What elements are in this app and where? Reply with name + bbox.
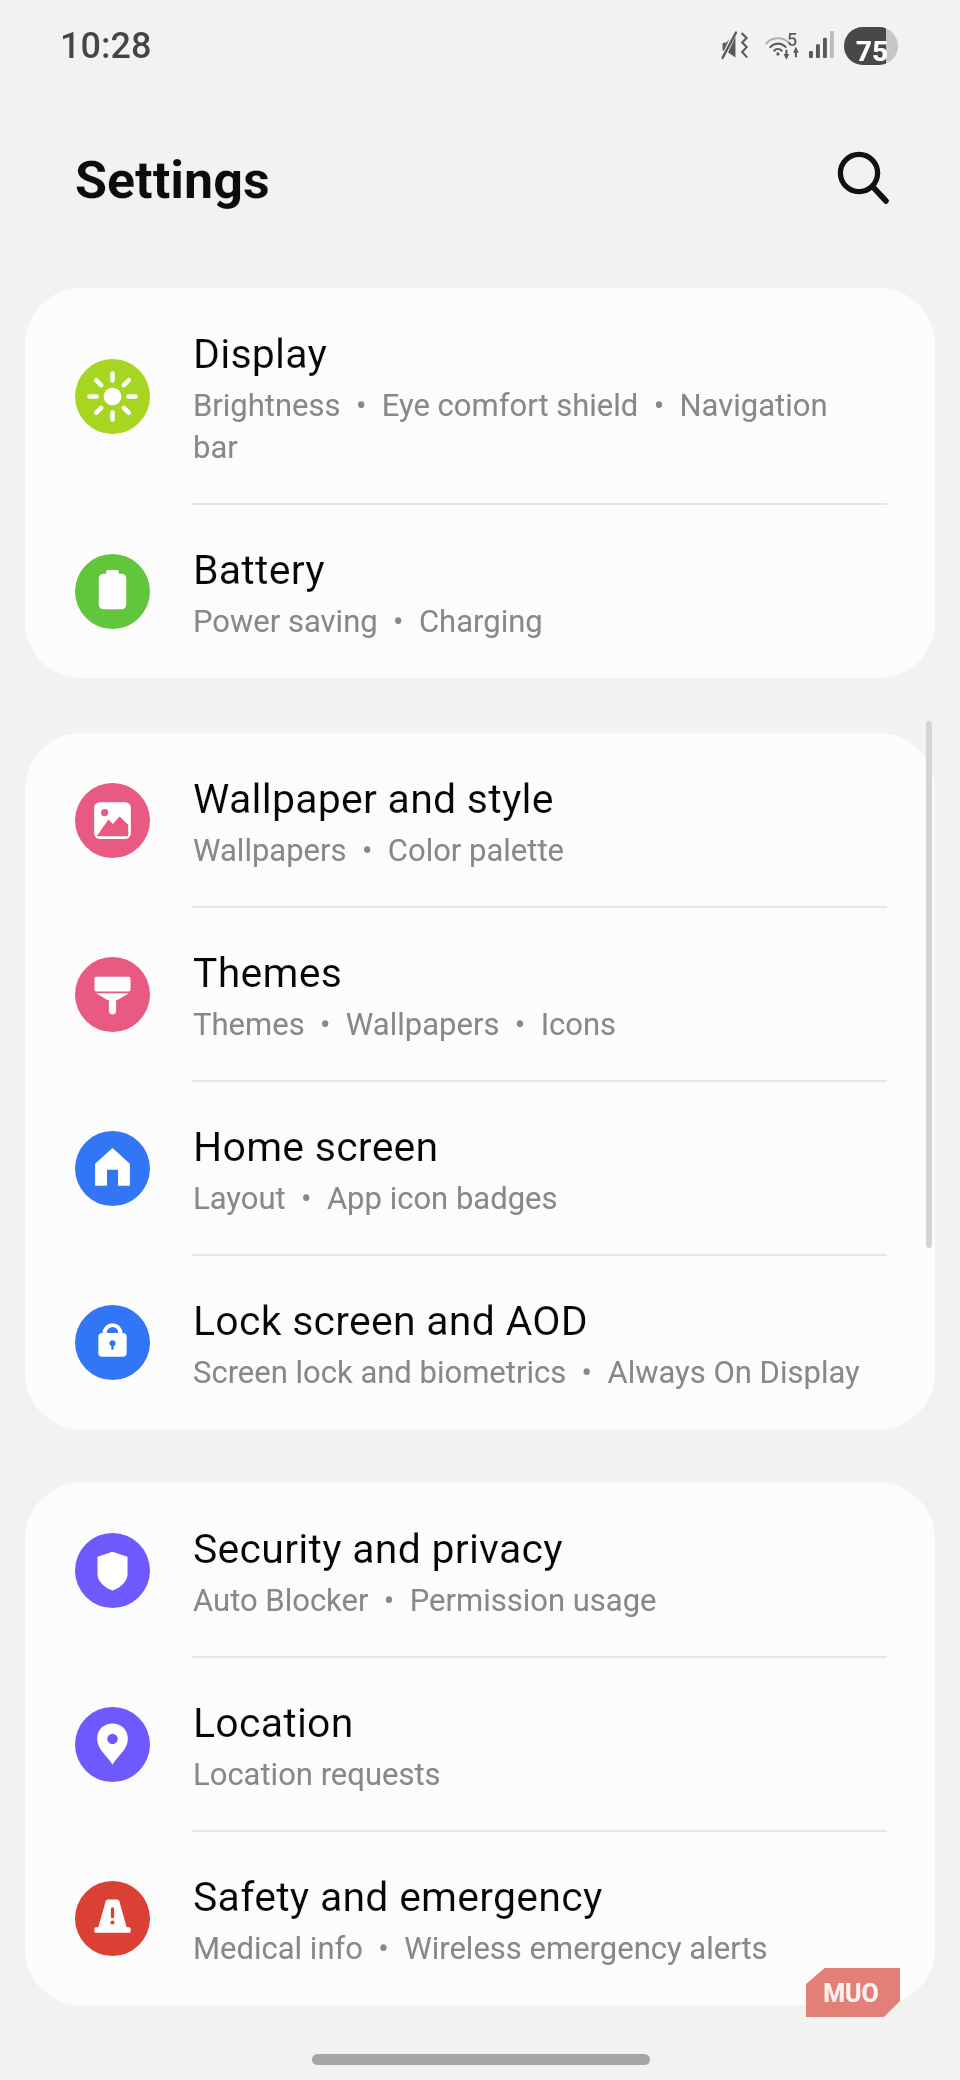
button[interactable]: Home screen [25,1081,935,1255]
staticText: Location [193,1699,935,1747]
button[interactable]: Themes [25,907,935,1081]
staticText: Themes • Wallpapers • Icons [193,1002,935,1044]
button[interactable]: Safety and emergency [25,1831,935,2005]
staticText: 10:28 [60,25,152,67]
staticText: Battery [193,546,935,594]
button[interactable]: Battery [25,504,935,678]
staticText: Screen lock and biometrics • Always On D… [193,1350,935,1392]
staticText: Lock screen and AOD [193,1297,935,1345]
staticText: Auto Blocker • Permission usage [193,1578,935,1620]
staticText: Settings [75,150,270,211]
staticText: 5 [787,29,798,50]
staticText: Location requests [193,1752,935,1794]
button[interactable]: Location [25,1657,935,1831]
staticText: Themes [193,949,935,997]
staticText: Medical info • Wireless emergency alerts [193,1926,935,1968]
staticText: Safety and emergency [193,1873,935,1921]
staticText: Layout • App icon badges [193,1176,935,1218]
button[interactable]: Search [817,133,901,217]
staticText: Power saving • Charging [193,599,935,641]
button[interactable]: Security and privacy [25,1483,935,1657]
staticText: Brightness • Eye comfort shield • Naviga… [193,383,858,467]
staticText: Wallpapers • Color palette [193,828,935,870]
staticText: Home screen [193,1123,935,1171]
staticText: Display [193,330,935,378]
staticText: 75 [856,35,889,65]
staticText: MUO [823,1979,879,2008]
staticText: Security and privacy [193,1525,935,1573]
button[interactable]: Display [25,288,935,504]
button[interactable]: Wallpaper and style [25,733,935,907]
button[interactable]: Lock screen and AOD [25,1255,935,1429]
staticText: Wallpaper and style [193,775,935,823]
